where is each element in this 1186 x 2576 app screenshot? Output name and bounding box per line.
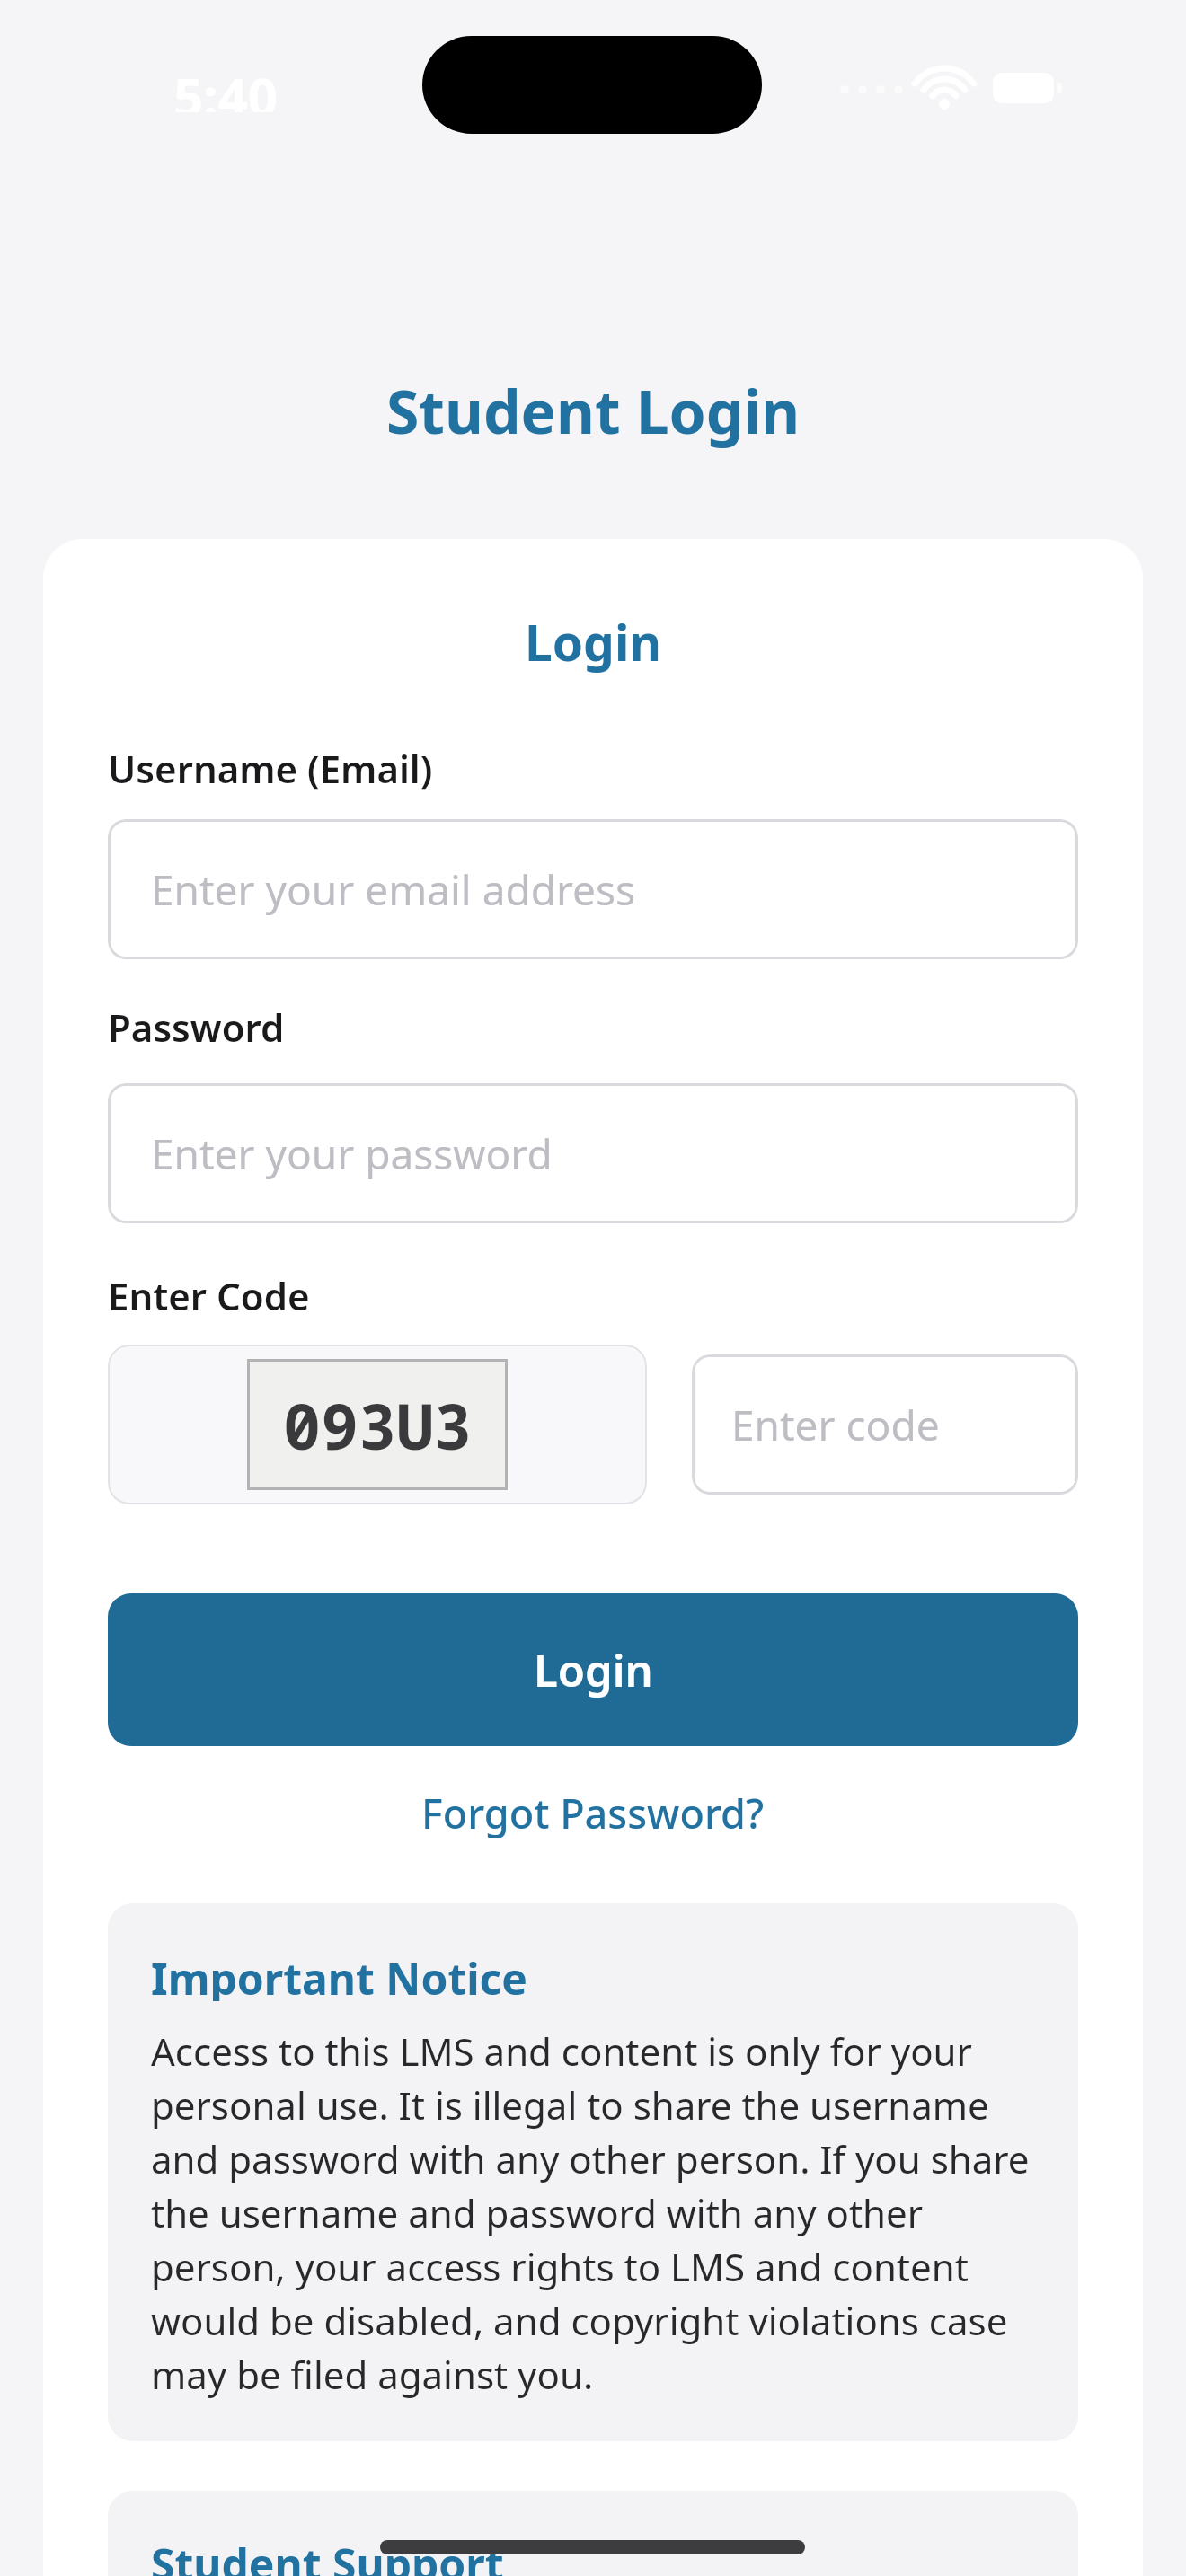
staticText: Enter your password <box>151 1125 553 1182</box>
staticText: Enter Code <box>108 1270 310 1321</box>
button[interactable]: Login <box>108 1593 1078 1746</box>
staticText: 093U3 <box>283 1382 472 1468</box>
staticText: Forgot Password? <box>421 1786 765 1838</box>
staticText: Student Login <box>386 370 801 449</box>
staticText: Login <box>534 1640 653 1700</box>
staticText: Enter code <box>731 1397 940 1453</box>
staticText: Username (Email) <box>108 743 433 794</box>
button[interactable]: Forgot Password? <box>341 1786 845 1838</box>
staticText: Enter your email address <box>151 861 636 918</box>
staticText: Student Support <box>151 2535 504 2576</box>
button[interactable]: Enter your email address <box>108 819 1078 959</box>
button[interactable]: Enter code <box>692 1354 1078 1495</box>
staticText: Login <box>525 608 662 675</box>
staticText: 5:40 <box>173 60 278 112</box>
staticText: Access to this LMS and content is only f… <box>151 2025 1030 2400</box>
button[interactable]: Enter your password <box>108 1083 1078 1223</box>
staticText: Important Notice <box>151 1949 527 2001</box>
staticText: Password <box>108 1001 285 1053</box>
